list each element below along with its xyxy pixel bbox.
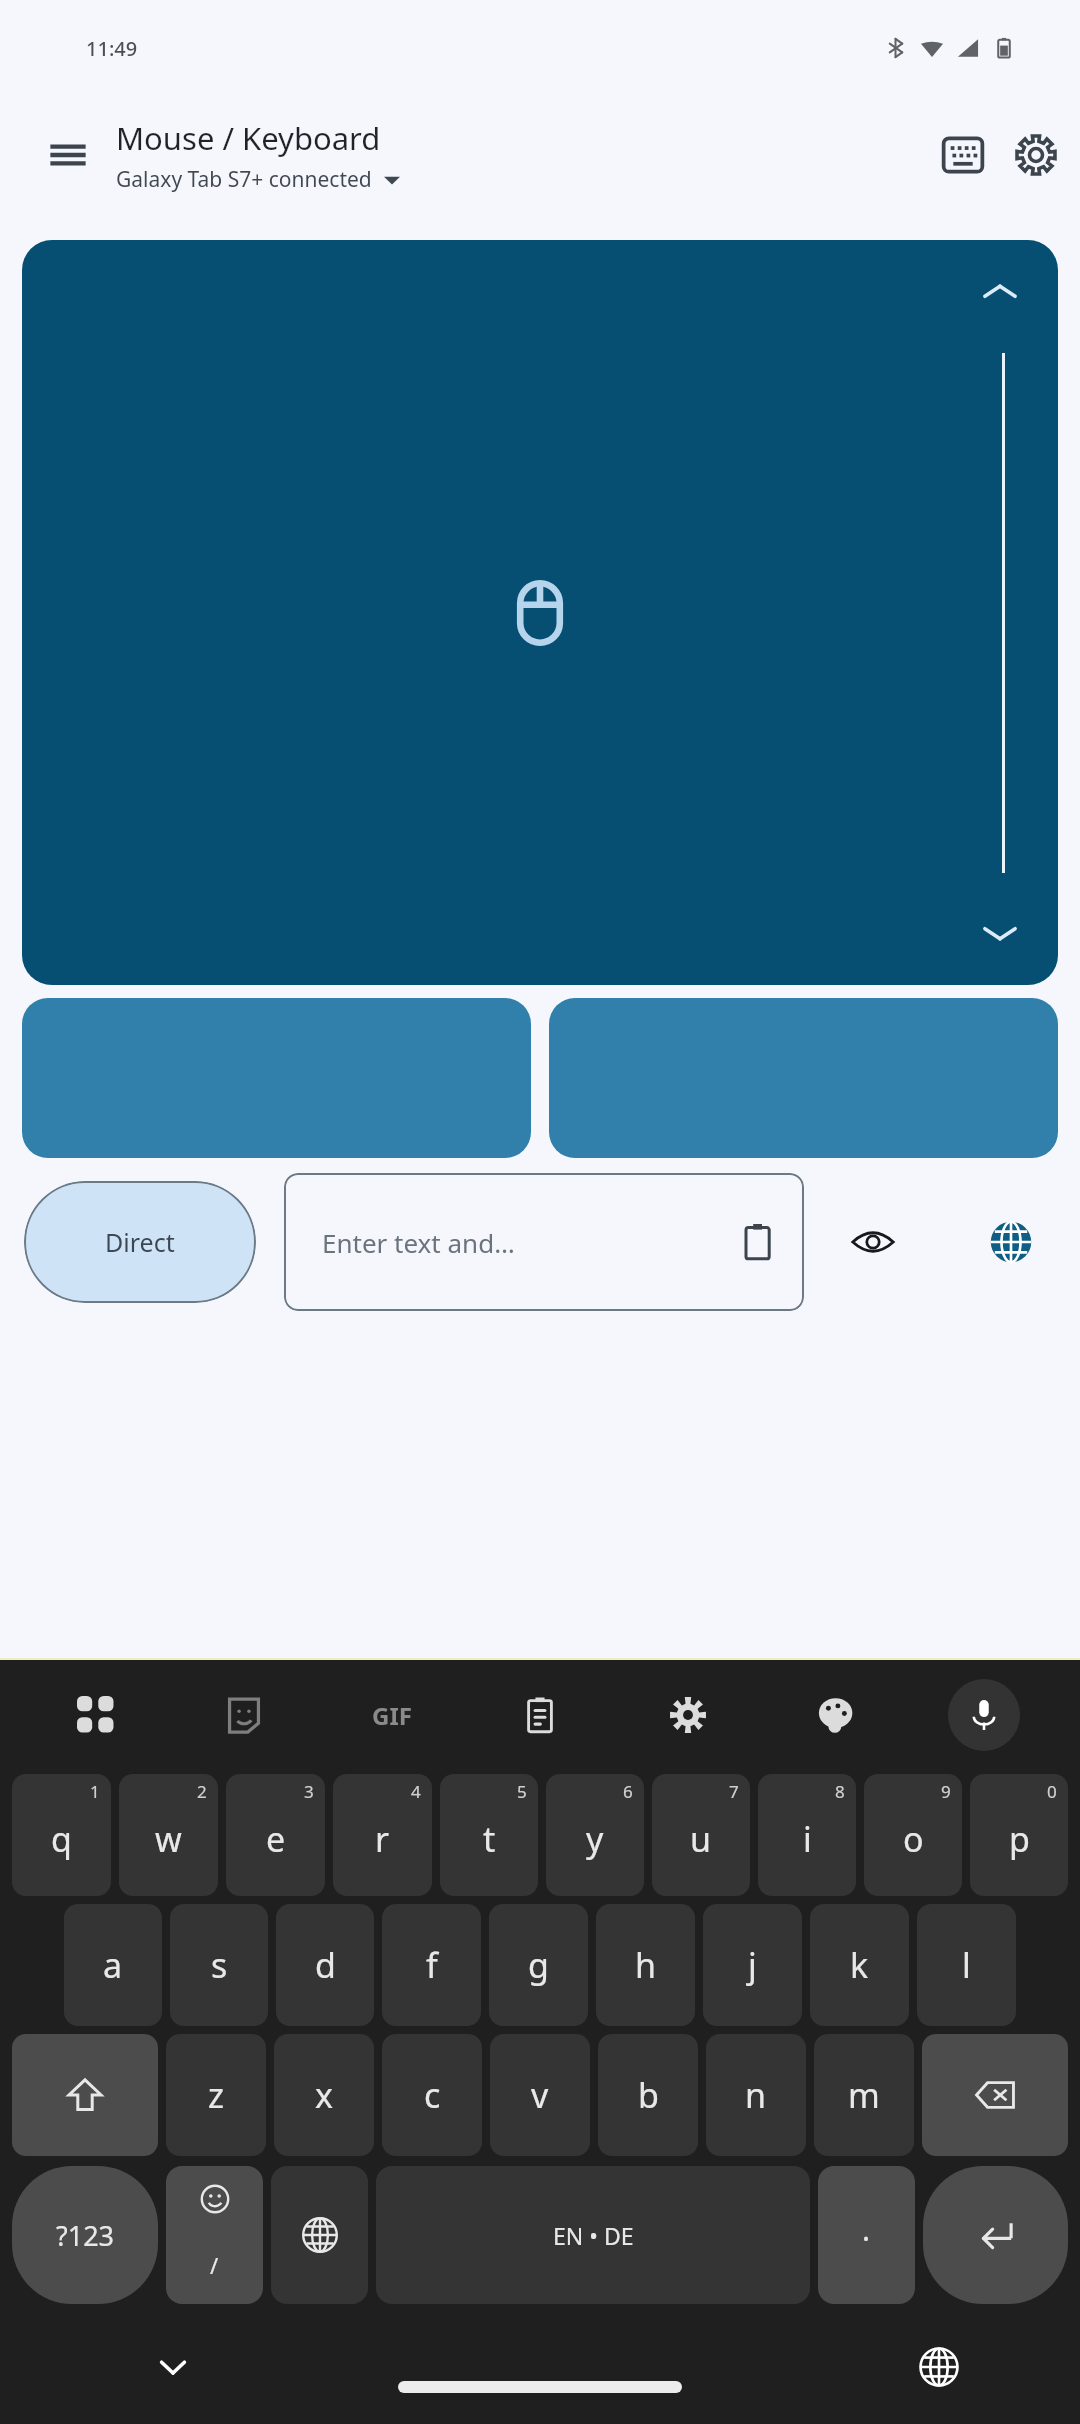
button[interactable]: c <box>382 2034 482 2156</box>
staticText: Galaxy Tab S7+ connected <box>116 165 372 194</box>
button[interactable]: Show text <box>804 1172 942 1312</box>
button[interactable]: Shift <box>12 2034 158 2156</box>
staticText: e <box>266 1816 286 1862</box>
button[interactable]: v <box>490 2034 590 2156</box>
button[interactable]: g <box>489 1904 588 2026</box>
staticText: 8 <box>835 1780 845 1803</box>
staticText: h <box>635 1942 657 1988</box>
button[interactable]: 7 <box>652 1774 750 1896</box>
staticText: u <box>690 1816 712 1862</box>
button[interactable]: Touchpad area <box>22 240 1058 985</box>
staticText: Mouse / Keyboard <box>116 117 381 159</box>
staticText: t <box>483 1816 496 1862</box>
staticText: p <box>1009 1816 1030 1862</box>
staticText: v <box>531 2072 549 2118</box>
button[interactable]: Right mouse button <box>549 998 1058 1158</box>
button[interactable]: Open navigation menu <box>34 121 102 189</box>
button[interactable]: Hide keyboard <box>140 2334 206 2400</box>
button[interactable]: k <box>810 1904 909 2026</box>
button[interactable]: Settings <box>1002 116 1070 194</box>
button[interactable]: Backspace <box>922 2034 1068 2156</box>
button[interactable]: Galaxy Tab S7+ connected <box>116 165 400 194</box>
button[interactable]: 9 <box>864 1774 962 1896</box>
button[interactable]: m <box>814 2034 914 2156</box>
button[interactable]: n <box>706 2034 806 2156</box>
staticText: f <box>426 1942 438 1988</box>
staticText: 5 <box>517 1780 527 1803</box>
button[interactable]: x <box>274 2034 374 2156</box>
staticText: 9 <box>941 1780 951 1803</box>
staticText: Enter text and… <box>322 1225 738 1260</box>
button[interactable]: Switch language <box>271 2166 368 2304</box>
staticText: g <box>528 1942 549 1988</box>
staticText: i <box>803 1816 812 1862</box>
button[interactable]: 0 <box>970 1774 1068 1896</box>
staticText: l <box>962 1942 971 1988</box>
staticText: z <box>208 2072 224 2118</box>
button[interactable]: j <box>703 1904 802 2026</box>
staticText: 6 <box>623 1780 633 1803</box>
staticText: w <box>155 1816 182 1862</box>
staticText: q <box>51 1816 72 1862</box>
staticText: / <box>210 2250 219 2280</box>
button[interactable]: . <box>818 2166 915 2304</box>
button[interactable]: Scroll down <box>968 901 1032 965</box>
button[interactable]: d <box>276 1904 374 2026</box>
button[interactable]: 1 <box>12 1774 111 1896</box>
button[interactable]: Clipboard <box>509 1684 571 1746</box>
button[interactable]: Direct <box>24 1181 256 1303</box>
staticText: m <box>848 2072 880 2118</box>
staticText: c <box>424 2072 441 2118</box>
staticText: 11:49 <box>86 35 138 62</box>
staticText: . <box>862 2209 871 2250</box>
button[interactable]: 5 <box>440 1774 538 1896</box>
button[interactable]: 6 <box>546 1774 644 1896</box>
staticText: k <box>850 1942 869 1988</box>
staticText: d <box>315 1942 336 1988</box>
button[interactable]: b <box>598 2034 698 2156</box>
button[interactable]: Theme <box>805 1684 867 1746</box>
staticText: 0 <box>1047 1780 1057 1803</box>
staticText: n <box>745 2072 767 2118</box>
staticText: 1 <box>90 1780 100 1803</box>
staticText: EN • DE <box>553 2220 634 2251</box>
staticText: b <box>638 2072 659 2118</box>
button[interactable]: Change input language <box>906 2334 972 2400</box>
staticText: a <box>103 1942 123 1988</box>
button[interactable]: ?123 <box>12 2166 158 2304</box>
staticText: x <box>315 2072 333 2118</box>
button[interactable]: Enter text and… <box>284 1173 804 1311</box>
button[interactable]: h <box>596 1904 695 2026</box>
button[interactable]: 3 <box>226 1774 325 1896</box>
button[interactable]: Enter <box>923 2166 1068 2304</box>
staticText: 7 <box>729 1780 739 1803</box>
button[interactable]: s <box>170 1904 268 2026</box>
staticText: j <box>748 1942 757 1988</box>
button[interactable]: l <box>917 1904 1016 2026</box>
button[interactable]: EN • DE <box>376 2166 810 2304</box>
button[interactable]: Change language <box>942 1172 1080 1312</box>
button[interactable]: Keyboard settings <box>657 1684 719 1746</box>
staticText: 2 <box>197 1780 207 1803</box>
button[interactable]: Toolbar <box>65 1684 127 1746</box>
button[interactable]: 8 <box>758 1774 856 1896</box>
staticText: o <box>903 1816 924 1862</box>
button[interactable]: f <box>382 1904 481 2026</box>
button[interactable]: Left mouse button <box>22 998 531 1158</box>
button[interactable]: 4 <box>333 1774 432 1896</box>
staticText: r <box>375 1816 390 1862</box>
button[interactable]: Show keyboard <box>924 116 1002 194</box>
staticText: ?123 <box>56 2217 115 2254</box>
button[interactable]: Scroll up <box>968 260 1032 324</box>
button[interactable]: a <box>64 1904 162 2026</box>
button[interactable]: z <box>166 2034 266 2156</box>
button[interactable]: GIF <box>361 1684 423 1746</box>
staticText: s <box>211 1942 228 1988</box>
staticText: 3 <box>304 1780 314 1803</box>
staticText: GIF <box>372 1699 412 1732</box>
button[interactable]: Emoji <box>166 2166 263 2304</box>
button[interactable]: 2 <box>119 1774 218 1896</box>
button[interactable]: Voice input <box>948 1679 1020 1751</box>
button[interactable]: Stickers <box>213 1684 275 1746</box>
staticText: Direct <box>105 1225 175 1259</box>
